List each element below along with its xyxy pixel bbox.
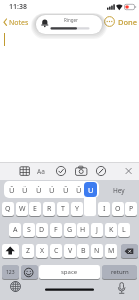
button[interactable]: Ū [60,182,72,197]
button[interactable]: F [50,223,62,237]
staticText: Hey [113,186,125,195]
button[interactable] [115,280,128,294]
staticText: X [40,246,45,256]
staticText: D [39,225,45,235]
button[interactable]: Ú [46,182,58,197]
staticText: Ú [49,185,55,195]
button[interactable] [54,164,68,178]
staticText: Ŭ [76,185,82,195]
staticText: T [61,204,65,214]
button[interactable]: D [36,223,48,237]
button[interactable]: Done [118,16,139,28]
staticText: F [54,225,58,235]
button[interactable]: J [91,223,103,237]
staticText: 123 [6,269,15,276]
staticText: Aa [37,167,45,176]
button[interactable]: space [39,265,100,279]
button[interactable] [121,164,135,178]
button[interactable]: B [77,244,89,258]
button[interactable]: Hey [103,181,139,198]
button[interactable]: S [23,223,35,237]
button[interactable] [0,14,34,30]
button[interactable]: W [16,202,28,216]
staticText: O [115,204,121,214]
staticText: J [96,225,98,235]
button[interactable] [34,164,49,178]
staticText: I [103,204,106,214]
button[interactable] [121,244,138,258]
button[interactable]: V [64,244,76,258]
staticText: Ū [63,185,69,195]
staticText: M [108,246,115,256]
button[interactable] [17,164,32,178]
staticText: C [54,246,59,256]
staticText: H [80,225,86,235]
staticText: G [67,225,73,235]
staticText: A [13,225,18,235]
staticText: E [33,204,37,214]
button[interactable]: C [50,244,62,258]
button[interactable]: L [118,223,130,237]
button[interactable]: G [64,223,76,237]
button[interactable]: 123 [2,265,19,279]
button[interactable]: N [91,244,103,258]
staticText: Y [75,204,79,214]
button[interactable]: Ü [19,182,31,197]
staticText: 11:38 [9,2,27,12]
button[interactable]: T [57,202,69,216]
button[interactable] [2,244,19,258]
button[interactable]: X [36,244,48,258]
button[interactable]: I [98,202,110,216]
staticText: W [19,204,26,214]
button[interactable]: Ŭ [73,182,85,197]
staticText: S [27,225,31,235]
button[interactable] [21,265,38,279]
staticText: Ringer [64,17,78,23]
button[interactable]: O [112,202,124,216]
button[interactable]: Ù [33,182,45,197]
button[interactable]: Z [22,244,34,258]
staticText: Z [26,246,31,256]
staticText: K [109,225,114,235]
staticText: return [111,268,129,276]
staticText: B [81,246,86,256]
staticText: Ü [22,185,28,195]
button[interactable]: H [77,223,89,237]
staticText: space [61,268,78,276]
button[interactable] [94,164,108,178]
staticText: L [122,225,126,235]
button[interactable]: U [84,182,97,197]
button[interactable]: return [102,265,137,279]
staticText: Ù [36,185,42,195]
button[interactable] [103,15,116,28]
staticText: Notes [9,18,29,28]
button[interactable] [73,164,89,178]
staticText: N [94,246,100,256]
button[interactable]: Q [2,202,14,216]
button[interactable]: E [29,202,41,216]
button[interactable] [9,280,22,293]
staticText: Û [9,185,15,195]
staticText: Q [5,204,11,214]
staticText: R [47,204,52,214]
staticText: U [88,185,94,195]
button[interactable]: Y [71,202,83,216]
button[interactable]: Û [6,182,18,197]
button[interactable]: P [125,202,137,216]
button[interactable]: A [9,223,21,237]
button[interactable]: R [43,202,55,216]
button[interactable]: M [105,244,117,258]
staticText: V [68,246,73,256]
button[interactable]: K [105,223,117,237]
staticText: Done [118,17,138,27]
staticText: P [129,204,134,214]
